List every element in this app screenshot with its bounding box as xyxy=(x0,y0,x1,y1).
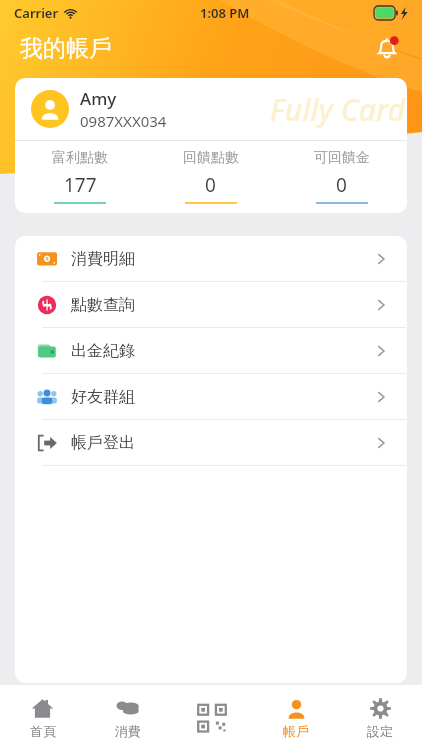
button[interactable]: 消費 xyxy=(85,685,170,750)
staticText: 帳戶登出 xyxy=(71,433,135,453)
staticText: 消費明細 xyxy=(71,249,135,269)
staticText: 0 xyxy=(205,172,216,198)
staticText: 點數查詢 xyxy=(71,295,135,315)
button[interactable]: 點數查詢 xyxy=(15,282,407,327)
button[interactable]: 設定 xyxy=(338,685,422,750)
staticText: 出金紀錄 xyxy=(71,341,135,361)
button[interactable]: QR code xyxy=(170,685,254,750)
staticText: 設定 xyxy=(367,723,393,739)
staticText: 我的帳戶 xyxy=(20,34,112,63)
button[interactable]: 帳戶登出 xyxy=(15,420,407,465)
staticText: 富利點數 xyxy=(52,149,108,167)
staticText: 1:08 PM xyxy=(200,4,250,22)
staticText: 177 xyxy=(64,172,97,198)
staticText: 0987XXX034 xyxy=(80,111,167,131)
staticText: Carrier xyxy=(14,4,59,22)
button[interactable]: 帳戶 xyxy=(254,685,338,750)
staticText: 可回饋金 xyxy=(314,149,370,167)
staticText: Fully Card xyxy=(270,89,405,130)
staticText: Amy xyxy=(80,87,117,110)
button[interactable]: 消費明細 xyxy=(15,236,407,281)
button[interactable]: Notifications xyxy=(370,31,404,65)
staticText: 首頁 xyxy=(30,723,56,739)
staticText: 好友群組 xyxy=(71,387,135,407)
staticText: 消費 xyxy=(115,723,141,739)
staticText: 0 xyxy=(336,172,347,198)
button[interactable]: 首頁 xyxy=(0,685,85,750)
staticText: 帳戶 xyxy=(283,723,309,739)
staticText: 回饋點數 xyxy=(183,149,239,167)
button[interactable]: 出金紀錄 xyxy=(15,328,407,373)
button[interactable]: 好友群組 xyxy=(15,374,407,419)
